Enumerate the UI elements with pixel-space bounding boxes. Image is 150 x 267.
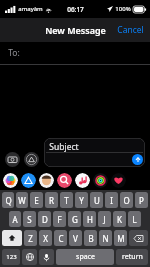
staticText: D <box>42 214 48 225</box>
button[interactable]: Z <box>24 230 37 246</box>
staticText: Cancel <box>117 24 144 36</box>
staticText: Q <box>5 195 12 206</box>
staticText: 123 <box>6 253 17 261</box>
button[interactable]: 123 <box>2 249 20 265</box>
button[interactable]: K <box>113 211 126 227</box>
button[interactable]: Photos <box>3 173 18 188</box>
button[interactable]: Music Search <box>57 173 72 188</box>
button[interactable]: G <box>68 211 81 227</box>
staticText: space <box>76 252 95 262</box>
button[interactable]: Subject <box>44 138 145 167</box>
button[interactable]: Shift <box>2 230 22 246</box>
staticText: G <box>72 214 78 225</box>
staticText: U <box>94 195 100 206</box>
staticText: New Message <box>45 24 106 36</box>
button[interactable]: Send <box>132 154 143 165</box>
staticText: Y <box>79 195 84 206</box>
button[interactable]: A <box>9 211 21 227</box>
button[interactable]: Dictation <box>39 249 54 265</box>
button[interactable]: space <box>56 249 114 265</box>
staticText: H <box>87 214 93 225</box>
button[interactable]: H <box>83 211 96 227</box>
button[interactable]: J <box>98 211 111 227</box>
staticText: 100% <box>115 5 131 13</box>
staticText: W <box>18 195 26 206</box>
button[interactable]: B <box>84 230 97 246</box>
staticText: 06:17 <box>67 5 84 14</box>
button[interactable]: S <box>23 211 36 227</box>
button[interactable]: I <box>105 192 118 208</box>
button[interactable]: W <box>16 192 28 208</box>
staticText: I <box>110 195 113 206</box>
staticText: To: <box>8 47 20 59</box>
button[interactable]: Camera <box>5 152 20 167</box>
staticText: E <box>34 195 39 206</box>
button[interactable]: M <box>114 230 127 246</box>
button[interactable]: P <box>135 192 148 208</box>
button[interactable]: Q <box>2 192 14 208</box>
staticText: T <box>64 195 69 206</box>
staticText: N <box>102 233 109 244</box>
button[interactable]: U <box>90 192 103 208</box>
button[interactable]: Fitness <box>93 173 108 188</box>
button[interactable]: Cancel <box>111 20 150 40</box>
staticText: P <box>139 195 144 206</box>
staticText: B <box>88 233 94 244</box>
button[interactable]: V <box>69 230 82 246</box>
button[interactable]: Y <box>75 192 88 208</box>
button[interactable]: Apps <box>24 152 39 167</box>
staticText: return <box>122 252 143 262</box>
staticText: R <box>49 195 54 206</box>
staticText: O <box>123 195 130 206</box>
button[interactable]: return <box>116 249 148 265</box>
button[interactable]: N <box>99 230 112 246</box>
button[interactable]: R <box>45 192 58 208</box>
button[interactable]: O <box>120 192 133 208</box>
button[interactable]: C <box>54 230 67 246</box>
staticText: L <box>132 214 137 225</box>
button[interactable]: App Store <box>21 173 36 188</box>
button[interactable]: L <box>128 211 141 227</box>
button[interactable]: Memoji <box>39 173 54 188</box>
button[interactable]: Emoji <box>22 249 37 265</box>
button[interactable]: E <box>30 192 43 208</box>
button[interactable]: Backspace <box>129 230 148 246</box>
button[interactable]: To: <box>0 42 150 64</box>
staticText: V <box>73 233 78 244</box>
staticText: Z <box>28 233 33 244</box>
staticText: amayàm <box>18 5 43 13</box>
button[interactable]: D <box>38 211 51 227</box>
button[interactable]: X <box>39 230 52 246</box>
staticText: J <box>103 214 106 225</box>
staticText: F <box>57 214 62 225</box>
staticText: Subject <box>49 141 79 153</box>
staticText: X <box>43 233 48 244</box>
staticText: K <box>117 214 122 225</box>
staticText: M <box>117 233 125 244</box>
button[interactable]: F <box>53 211 66 227</box>
button[interactable]: Health <box>111 173 126 188</box>
staticText: C <box>58 233 64 244</box>
staticText: A <box>12 214 18 225</box>
button[interactable]: Apple Music <box>75 173 90 188</box>
button[interactable]: T <box>60 192 73 208</box>
staticText: S <box>27 214 32 225</box>
